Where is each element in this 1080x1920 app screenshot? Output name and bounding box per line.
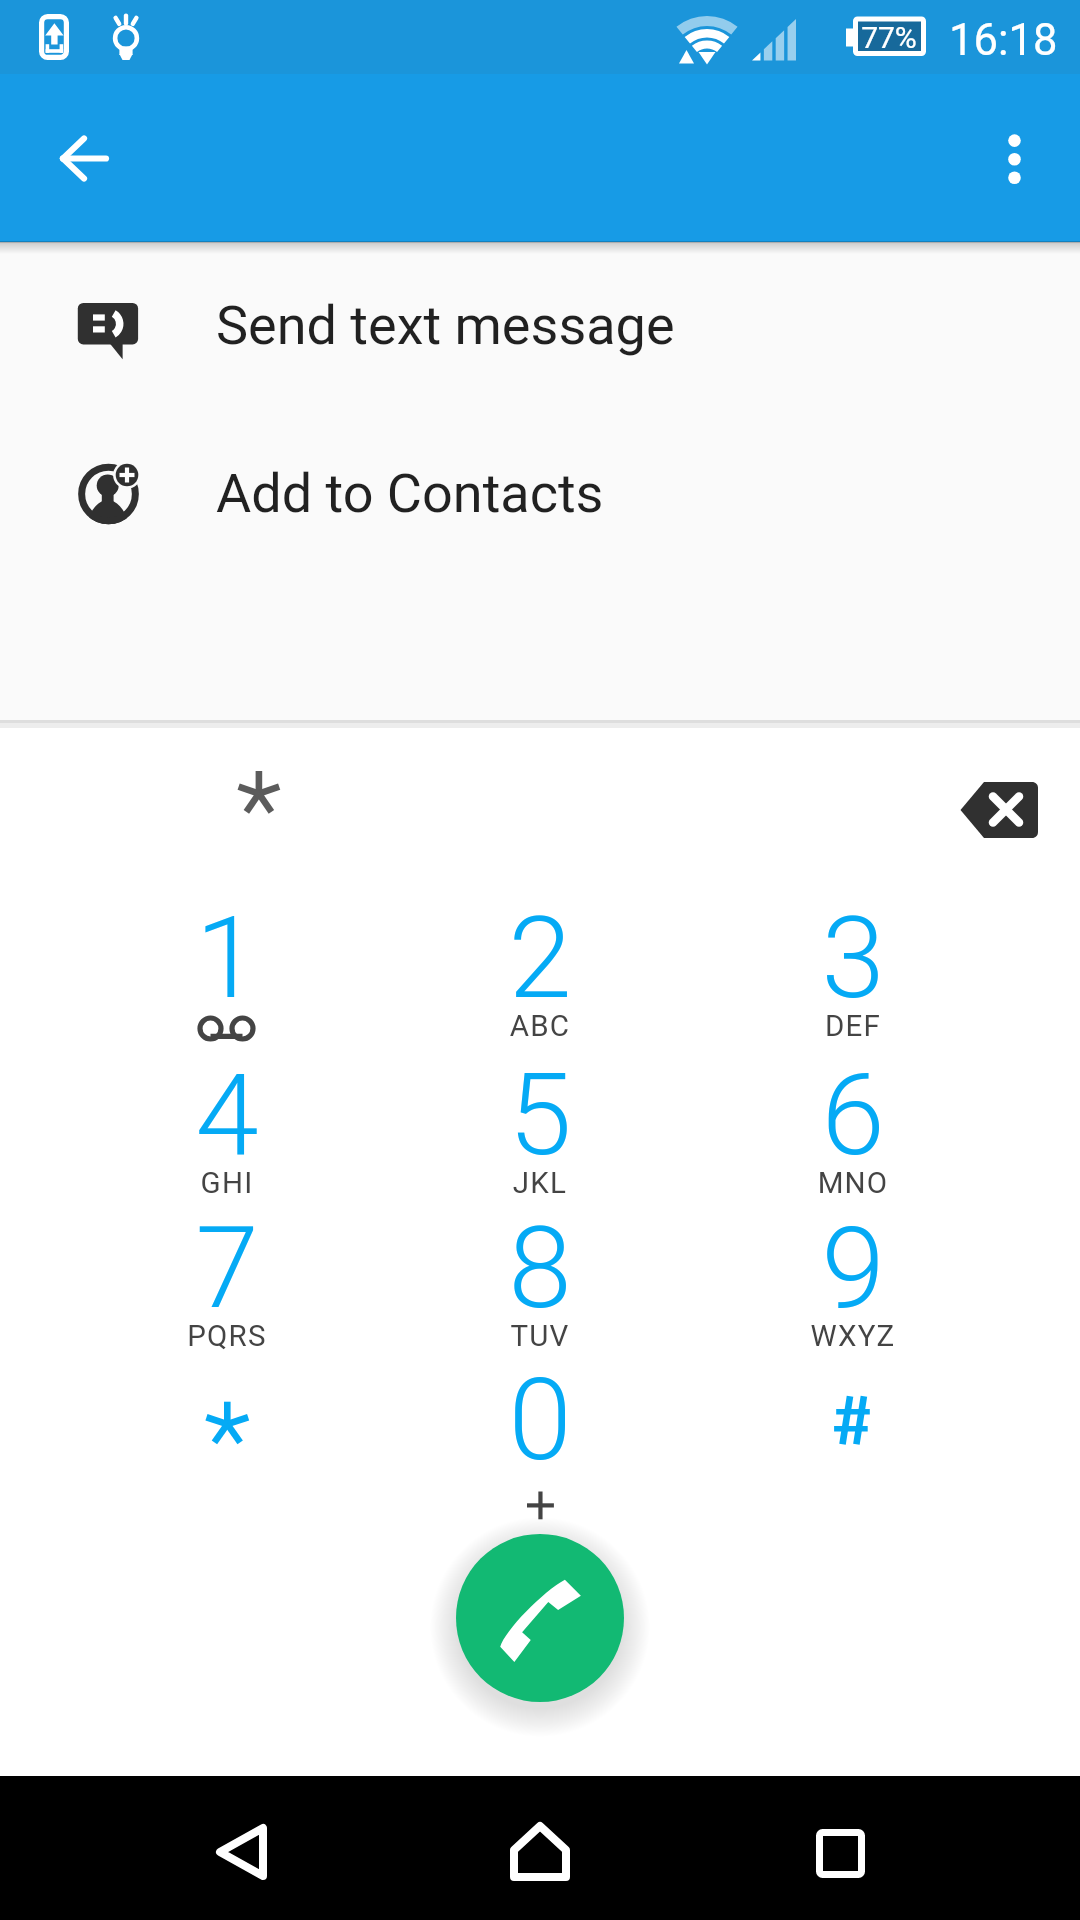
staticText: 8 bbox=[384, 1201, 696, 1335]
button[interactable]: 4 bbox=[71, 1054, 383, 1206]
staticText: ABC bbox=[384, 1009, 696, 1044]
staticText: 0 bbox=[384, 1353, 696, 1487]
staticText: GHI bbox=[71, 1166, 383, 1201]
button[interactable]: Delete bbox=[940, 750, 1060, 870]
staticText: 3 bbox=[697, 891, 1009, 1025]
button[interactable]: Navigate up bbox=[24, 98, 144, 218]
button[interactable]: Call bbox=[456, 1534, 624, 1702]
button[interactable]: 7 bbox=[71, 1207, 383, 1359]
staticText: 4 bbox=[71, 1048, 383, 1182]
staticText: 2 bbox=[384, 891, 696, 1025]
staticText: 7 bbox=[71, 1201, 383, 1335]
button[interactable]: 3 bbox=[697, 897, 1009, 1049]
button[interactable]: 5 bbox=[384, 1054, 696, 1206]
staticText: Send text message bbox=[216, 294, 1016, 357]
button[interactable]: 1 bbox=[71, 897, 383, 1049]
staticText: 5 bbox=[384, 1048, 696, 1182]
button[interactable]: Send text message bbox=[0, 260, 1080, 428]
button[interactable]: Recent apps bbox=[780, 1776, 900, 1920]
staticText: DEF bbox=[697, 1009, 1009, 1044]
button[interactable]: Home bbox=[480, 1776, 600, 1920]
staticText: 9 bbox=[697, 1201, 1009, 1335]
button[interactable]: Back bbox=[180, 1776, 300, 1920]
staticText: MNO bbox=[697, 1166, 1009, 1201]
staticText: 16:18 bbox=[949, 15, 1080, 66]
button[interactable]: 6 bbox=[697, 1054, 1009, 1206]
button[interactable]: 8 bbox=[384, 1207, 696, 1359]
staticText: Add to Contacts bbox=[216, 462, 1016, 525]
staticText: 77% bbox=[829, 20, 949, 55]
button[interactable]: star key bbox=[71, 1359, 383, 1511]
button[interactable]: More options bbox=[954, 98, 1074, 218]
staticText: TUV bbox=[384, 1319, 696, 1354]
staticText: 1 bbox=[71, 891, 383, 1025]
button[interactable]: 9 bbox=[697, 1207, 1009, 1359]
button[interactable]: Add to Contacts bbox=[0, 428, 1080, 596]
button[interactable]: 2 bbox=[384, 897, 696, 1049]
staticText: PQRS bbox=[71, 1319, 383, 1354]
staticText: WXYZ bbox=[697, 1319, 1009, 1354]
button[interactable]: pound key bbox=[697, 1359, 1009, 1511]
button[interactable]: 0 bbox=[384, 1359, 696, 1511]
staticText: JKL bbox=[384, 1166, 696, 1201]
staticText: 6 bbox=[697, 1048, 1009, 1182]
